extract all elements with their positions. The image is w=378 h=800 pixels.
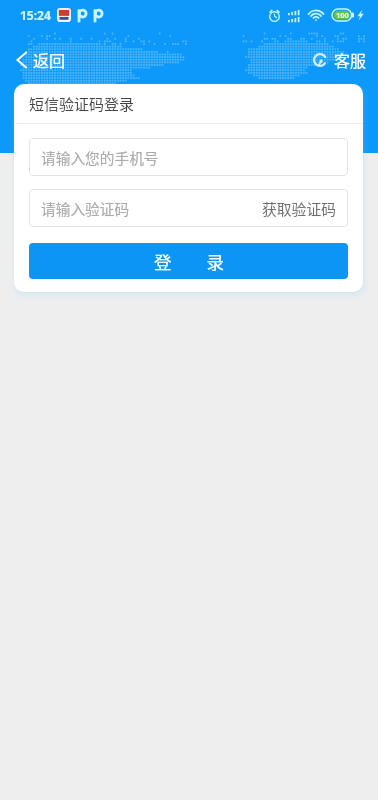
button[interactable]: 登 录 — [29, 243, 348, 279]
other: 客服 — [311, 51, 329, 69]
staticText: 100 — [336, 10, 349, 20]
staticText: 15:24 — [20, 7, 51, 23]
staticText: 请输入您的手机号 — [41, 147, 159, 168]
button[interactable]: 返回 — [14, 44, 68, 75]
button[interactable]: 获取验证码 — [262, 198, 348, 219]
staticText: 登 录 — [154, 249, 224, 274]
button[interactable]: 请输入您的手机号 — [29, 138, 348, 176]
staticText: 请输入验证码 — [41, 198, 130, 219]
staticText: 短信验证码登录 — [29, 93, 135, 115]
staticText: 客服 — [334, 48, 367, 71]
staticText: 获取验证码 — [262, 198, 336, 219]
staticText: 返回 — [33, 48, 66, 71]
button[interactable]: 客服 — [309, 44, 369, 75]
